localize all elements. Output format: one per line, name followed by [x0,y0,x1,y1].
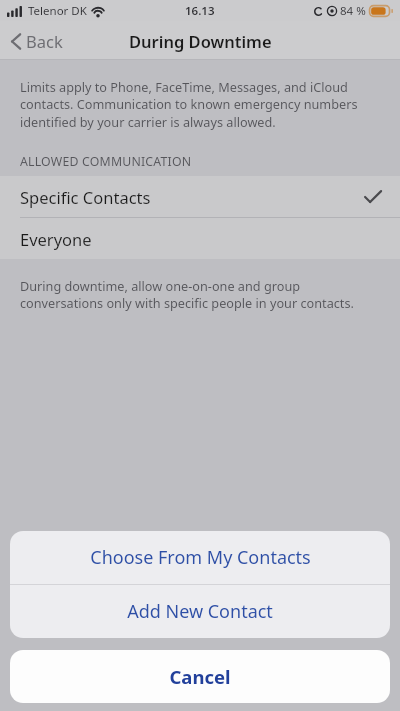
staticText: Cancel [169,664,231,689]
button[interactable]: Add New Contact [10,585,390,638]
button[interactable]: Back [0,24,73,58]
button[interactable]: Specific Contacts [0,176,400,217]
staticText: During downtime, allow one-on-one and gr… [20,277,378,311]
button[interactable]: Cancel [10,650,390,703]
staticText: Specific Contacts [20,186,151,208]
staticText: Everyone [20,228,92,250]
staticText: 16.13 [185,3,215,19]
staticText: Limits apply to Phone, FaceTime, Message… [20,78,378,130]
staticText: ALLOWED COMMUNICATION [20,153,400,170]
staticText: Back [26,30,63,52]
staticText: Telenor DK [28,3,87,19]
button[interactable]: Everyone [0,218,400,259]
button[interactable]: Choose From My Contacts [10,531,390,584]
staticText: Choose From My Contacts [90,545,311,570]
staticText: 84 % [340,3,366,19]
staticText: Add New Contact [127,599,273,624]
staticText: During Downtime [129,30,272,52]
